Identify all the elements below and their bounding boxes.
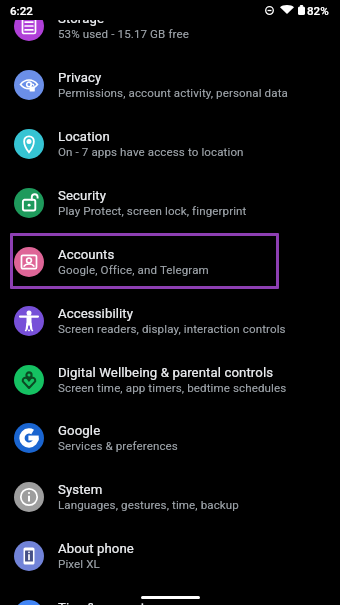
staticText: Permissions, account activity, personal … [58,86,288,100]
staticText: Location [58,129,110,144]
staticText: 6:22 [10,4,33,18]
button[interactable]: Accessibility [0,291,340,350]
staticText: Google, Office, and Telegram [58,263,209,277]
staticText: Screen readers, display, interaction con… [58,322,286,336]
staticText: About phone [58,541,134,556]
staticText: 82% [307,4,329,18]
button[interactable]: Location [0,114,340,173]
staticText: Play Protect, screen lock, fingerprint [58,204,247,218]
button[interactable]: Accounts [0,232,340,291]
button[interactable]: System [0,467,340,526]
staticText: Storage [58,19,105,26]
staticText: Screen time, app timers, bedtime schedul… [58,381,287,395]
staticText: Accessibility [58,306,134,321]
button[interactable]: Digital Wellbeing & parental controls [0,350,340,409]
button[interactable]: About phone [0,526,340,585]
staticText: 53% used - 15.17 GB free [58,27,189,41]
staticText: Privacy [58,70,102,85]
staticText: System [58,482,103,497]
staticText: Security [58,188,107,203]
staticText: Digital Wellbeing & parental controls [58,365,274,380]
staticText: On - 7 apps have access to location [58,145,244,159]
staticText: Languages, gestures, time, backup [58,498,239,512]
button[interactable]: Security [0,173,340,232]
staticText: Google [58,423,101,438]
button[interactable]: Storage [0,19,340,55]
staticText: Tips & support [58,600,145,605]
button[interactable]: Tips & support [0,585,340,605]
staticText: Accounts [58,247,115,262]
button[interactable]: Privacy [0,55,340,114]
staticText: Services & preferences [58,439,178,453]
staticText: Pixel XL [58,557,100,571]
button[interactable]: Google [0,408,340,467]
